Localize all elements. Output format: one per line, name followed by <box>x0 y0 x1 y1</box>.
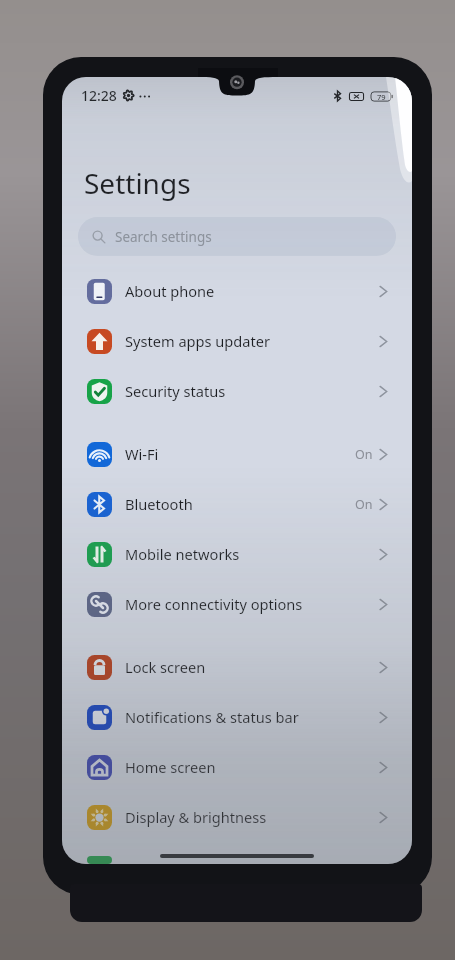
staticText: Settings <box>84 164 191 202</box>
staticText: Bluetooth <box>125 494 355 514</box>
staticText: On <box>355 446 373 463</box>
staticText: Security status <box>125 381 377 401</box>
staticText: 79 <box>377 92 386 102</box>
staticText: Search settings <box>115 228 212 246</box>
button[interactable]: Bluetooth <box>62 479 412 529</box>
button[interactable]: Lock screen <box>62 642 412 692</box>
button[interactable]: More connectivity options <box>62 579 412 629</box>
button[interactable]: Notifications & status bar <box>62 692 412 742</box>
button[interactable]: Search settings <box>78 217 396 256</box>
staticText: Wi-Fi <box>125 444 355 464</box>
button[interactable]: Mobile networks <box>62 529 412 579</box>
staticText: System apps updater <box>125 331 377 351</box>
staticText: Mobile networks <box>125 544 377 564</box>
staticText: More connectivity options <box>125 594 377 614</box>
staticText: Display & brightness <box>125 807 377 827</box>
staticText: Home screen <box>125 757 377 777</box>
button[interactable]: Display & brightness <box>62 792 412 842</box>
button[interactable]: Wi-Fi <box>62 429 412 479</box>
button[interactable]: Security status <box>62 366 412 416</box>
button[interactable]: About phone <box>62 266 412 316</box>
staticText: Notifications & status bar <box>125 707 377 727</box>
staticText: On <box>355 496 373 513</box>
staticText: 12:28 <box>81 86 117 105</box>
button[interactable]: System apps updater <box>62 316 412 366</box>
staticText: About phone <box>125 281 377 301</box>
button[interactable]: Home screen <box>62 742 412 792</box>
staticText: Lock screen <box>125 657 377 677</box>
